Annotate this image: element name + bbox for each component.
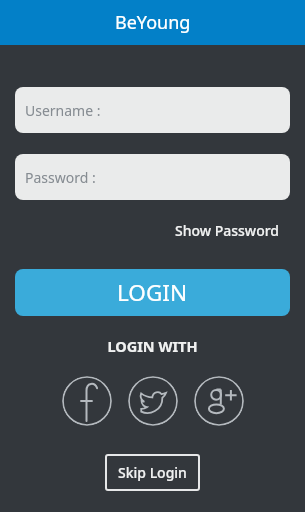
staticText: Password : (25, 168, 96, 187)
button[interactable]: Show Password (162, 215, 293, 245)
button[interactable]: Skip Login (105, 454, 200, 491)
staticText: Username : (25, 101, 101, 120)
button[interactable]: Username : (15, 87, 290, 133)
staticText: Show Password (175, 221, 280, 239)
button[interactable]: Login with Google Plus (194, 376, 244, 426)
staticText: LOGIN WITH (0, 336, 305, 356)
button[interactable]: Password : (15, 154, 290, 200)
button[interactable]: Login with Twitter (128, 376, 178, 426)
staticText: LOGIN (117, 277, 188, 308)
staticText: Skip Login (118, 463, 187, 482)
staticText: BeYoung (115, 10, 191, 35)
button[interactable]: Login with Facebook (62, 376, 112, 426)
button[interactable]: LOGIN (15, 269, 290, 316)
